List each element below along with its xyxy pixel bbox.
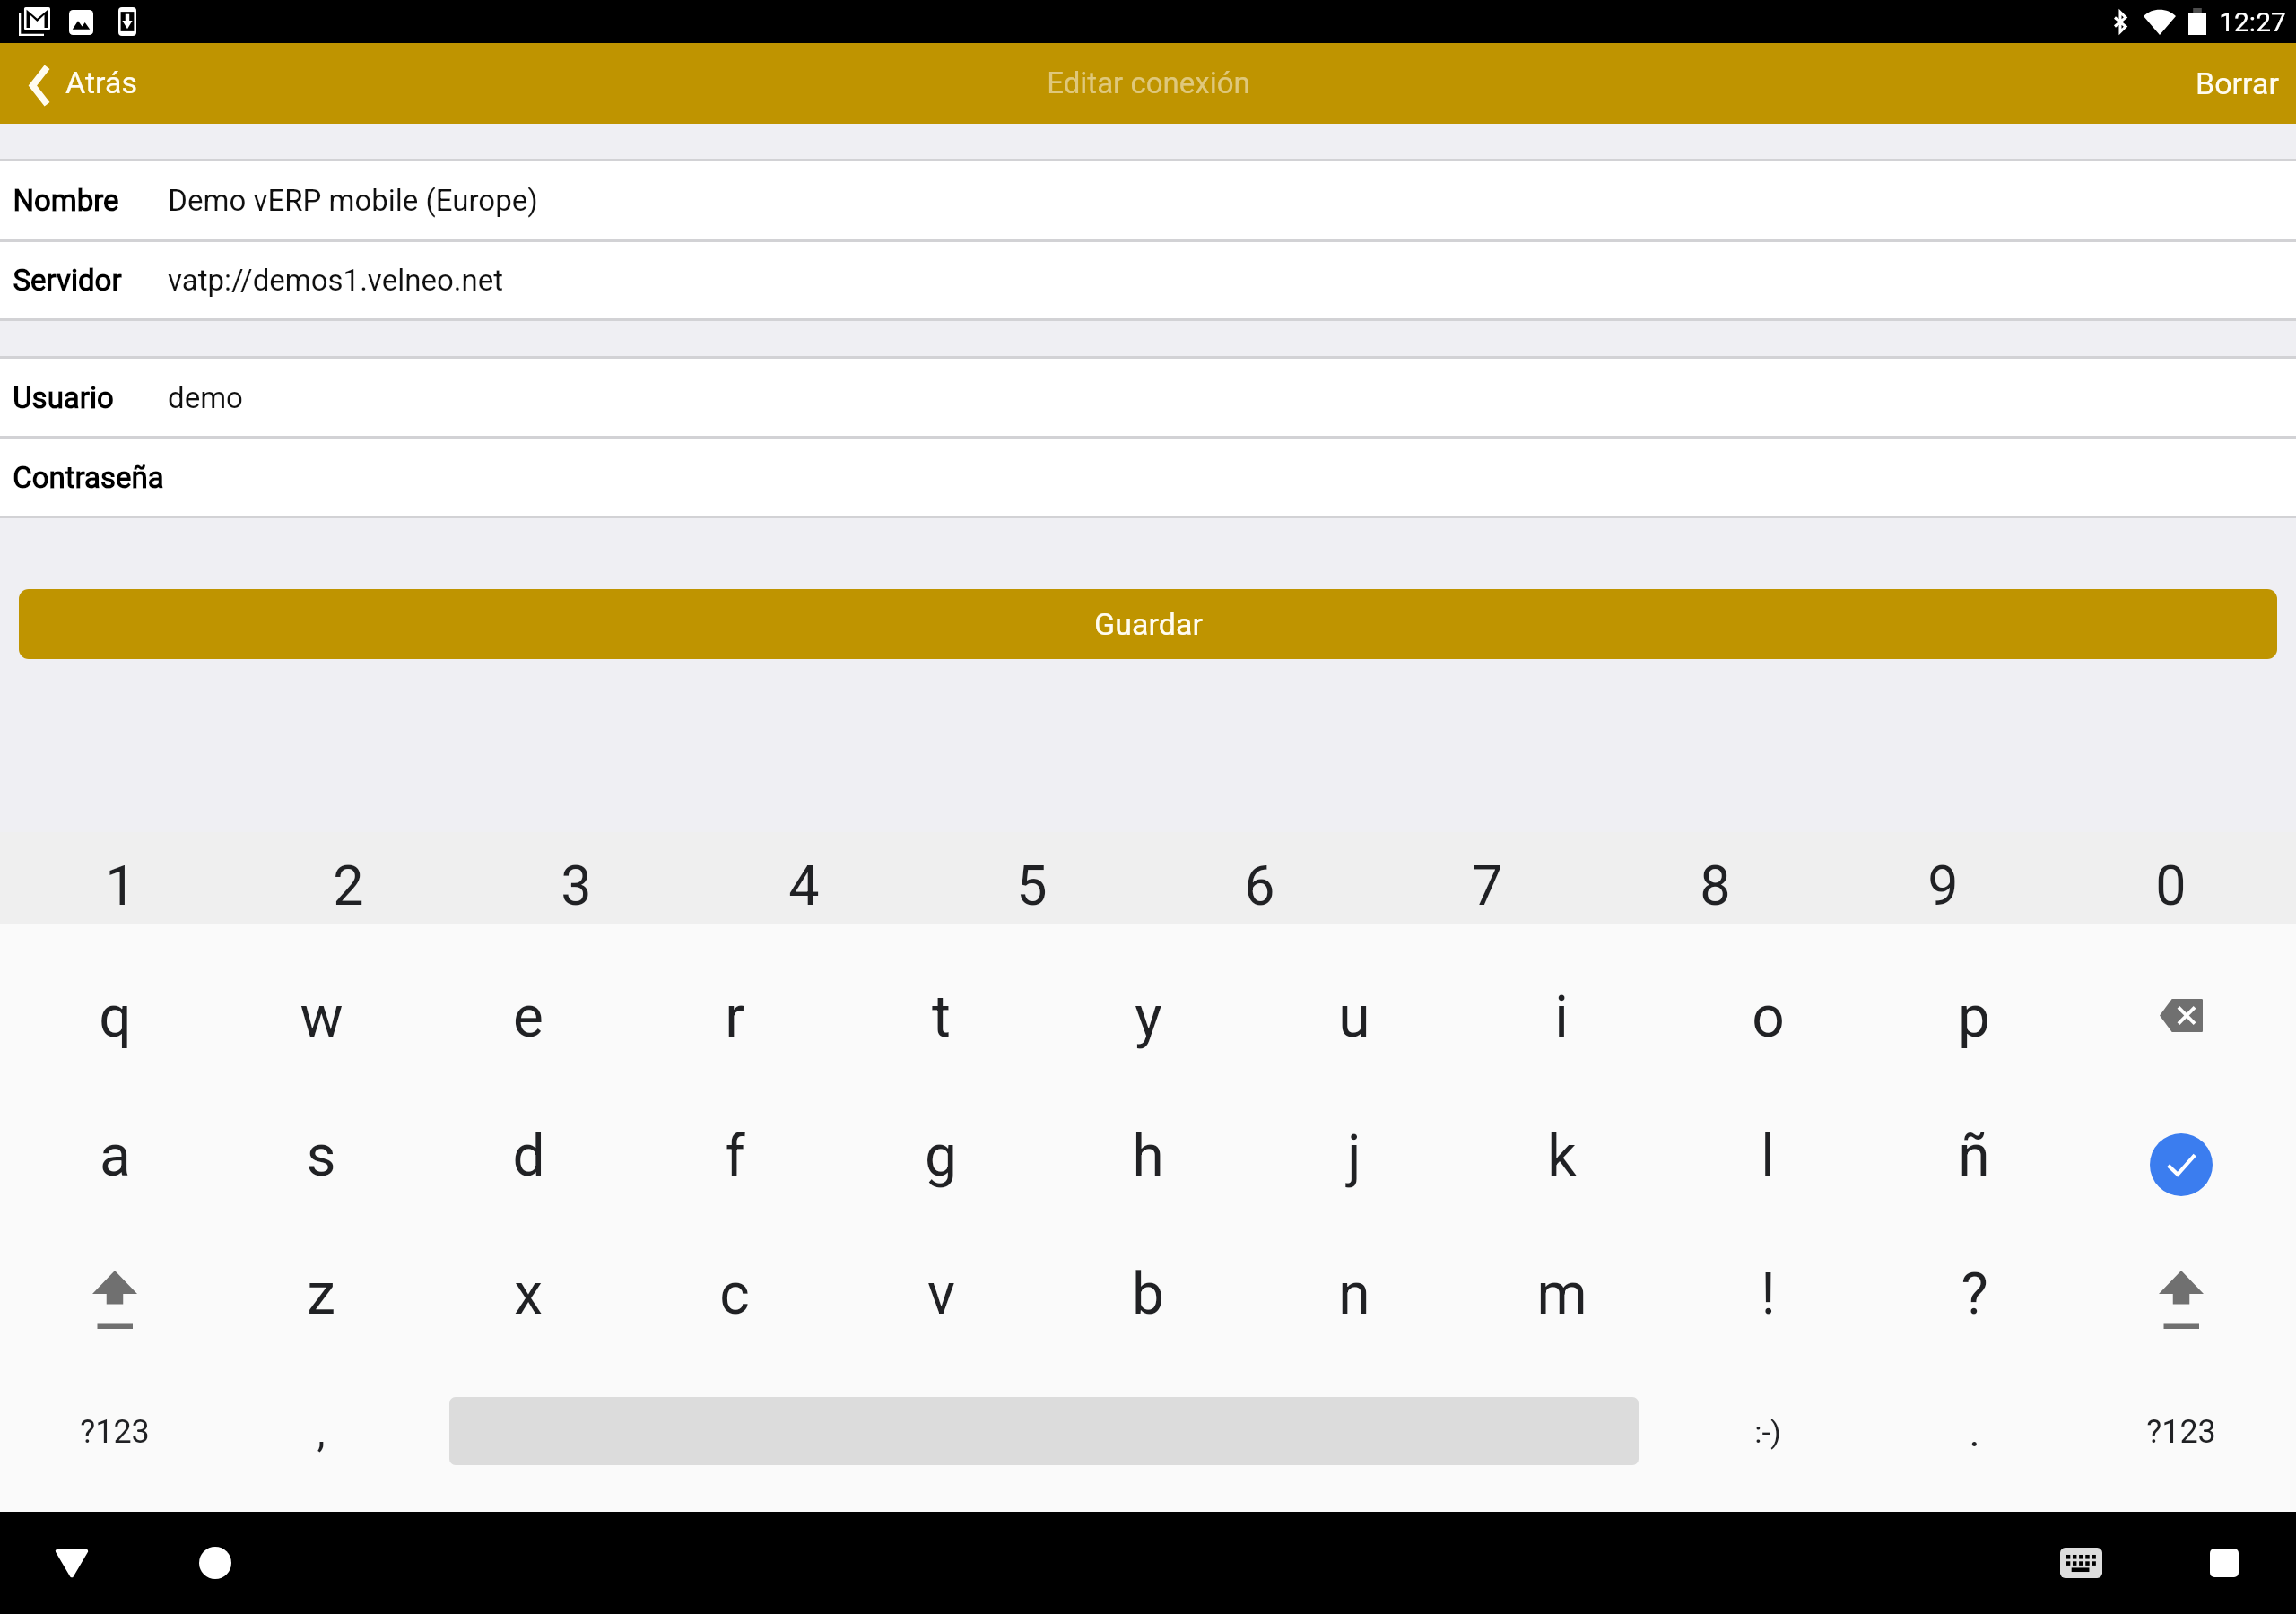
staticText: l (1761, 1123, 1775, 1190)
button[interactable]: h (1045, 1087, 1251, 1225)
staticText: ? (1961, 1261, 1988, 1328)
button[interactable]: t (838, 948, 1044, 1086)
button[interactable]: Shift (12, 1230, 218, 1368)
staticText: 0 (2155, 854, 2187, 917)
staticText: f (725, 1123, 745, 1190)
button[interactable]: 5 (918, 832, 1145, 924)
staticText: 2 (333, 854, 364, 917)
staticText: a (100, 1123, 131, 1190)
button[interactable]: l (1665, 1087, 1871, 1225)
staticText: o (1752, 984, 1785, 1051)
button[interactable]: f (631, 1087, 838, 1225)
button[interactable]: 3 (462, 832, 690, 924)
staticText: Guardar (1094, 606, 1203, 642)
button[interactable]: ?123 (12, 1363, 218, 1501)
staticText: n (1338, 1261, 1370, 1328)
button[interactable]: 2 (234, 832, 462, 924)
staticText: r (725, 984, 744, 1051)
button[interactable]: :-) (1665, 1363, 1871, 1501)
staticText: 4 (788, 854, 820, 917)
button[interactable]: Contraseña (0, 439, 2296, 516)
staticText: k (1547, 1123, 1577, 1190)
staticText: 1 (105, 854, 136, 917)
button[interactable]: o (1665, 948, 1871, 1086)
staticText: demo (168, 380, 243, 415)
button[interactable]: a (12, 1087, 218, 1225)
staticText: t (932, 984, 951, 1051)
button[interactable]: Back (18, 1512, 126, 1614)
button[interactable]: 0 (2057, 832, 2284, 924)
button[interactable]: . (1871, 1363, 2077, 1501)
button[interactable]: i (1458, 948, 1665, 1086)
staticText: w (300, 984, 344, 1051)
button[interactable]: Servidor (0, 242, 2296, 318)
button[interactable]: Enter (2078, 1096, 2284, 1234)
staticText: , (317, 1408, 326, 1456)
button[interactable]: Atrás (0, 43, 157, 124)
button[interactable]: Nombre (0, 161, 2296, 239)
button[interactable]: Space (449, 1397, 1639, 1465)
staticText: 9 (1927, 854, 1959, 917)
staticText: vatp://demos1.velneo.net (168, 263, 503, 298)
button[interactable]: g (838, 1087, 1044, 1225)
button[interactable]: j (1251, 1087, 1457, 1225)
staticText: Contraseña (13, 460, 164, 495)
button[interactable]: Recents (2170, 1512, 2278, 1614)
button[interactable]: ?123 (2078, 1363, 2284, 1501)
staticText: 5 (1016, 854, 1048, 917)
button[interactable]: s (218, 1087, 424, 1225)
button[interactable]: Usuario (0, 359, 2296, 436)
button[interactable]: Hide keyboard (2027, 1512, 2135, 1614)
button[interactable]: ! (1665, 1225, 1871, 1363)
staticText: Demo vERP mobile (Europe) (168, 183, 538, 218)
staticText: q (99, 984, 132, 1051)
staticText: 3 (561, 854, 592, 917)
button[interactable]: x (425, 1225, 631, 1363)
staticText: . (1969, 1408, 1980, 1456)
button[interactable]: ñ (1871, 1087, 2077, 1225)
staticText: 6 (1244, 854, 1275, 917)
button[interactable]: Borrar (2161, 43, 2296, 124)
button[interactable]: r (631, 948, 838, 1086)
staticText: Atrás (65, 65, 137, 100)
button[interactable]: 8 (1601, 832, 1829, 924)
staticText: :-) (1754, 1414, 1781, 1450)
staticText: 12:27 (2219, 6, 2286, 38)
button[interactable]: 6 (1145, 832, 1373, 924)
button[interactable]: d (425, 1087, 631, 1225)
staticText: ?123 (2146, 1413, 2216, 1451)
staticText: m (1536, 1261, 1587, 1328)
button[interactable]: Home (161, 1512, 269, 1614)
button[interactable]: ? (1871, 1225, 2077, 1363)
button[interactable]: Guardar (19, 589, 2277, 659)
staticText: Usuario (13, 380, 114, 415)
button[interactable]: m (1458, 1225, 1665, 1363)
button[interactable]: z (218, 1225, 424, 1363)
button[interactable]: b (1045, 1225, 1251, 1363)
button[interactable]: u (1251, 948, 1457, 1086)
button[interactable]: c (631, 1225, 838, 1363)
button[interactable]: y (1045, 948, 1251, 1086)
button[interactable]: e (425, 948, 631, 1086)
button[interactable]: 1 (6, 832, 234, 924)
button[interactable]: Backspace (2078, 946, 2284, 1084)
button[interactable]: p (1871, 948, 2077, 1086)
staticText: u (1338, 984, 1370, 1051)
staticText: ?123 (80, 1413, 150, 1451)
staticText: i (1554, 984, 1569, 1051)
staticText: p (1958, 984, 1990, 1051)
staticText: Servidor (13, 263, 122, 298)
staticText: v (927, 1261, 955, 1328)
button[interactable]: Shift (2078, 1230, 2284, 1368)
staticText: e (513, 984, 544, 1051)
button[interactable]: q (12, 948, 218, 1086)
button[interactable]: n (1251, 1225, 1457, 1363)
button[interactable]: w (218, 948, 424, 1086)
button[interactable]: , (218, 1363, 424, 1501)
button[interactable]: k (1458, 1087, 1665, 1225)
staticText: j (1347, 1123, 1361, 1190)
button[interactable]: 4 (690, 832, 918, 924)
button[interactable]: 9 (1829, 832, 2057, 924)
button[interactable]: v (838, 1225, 1044, 1363)
button[interactable]: 7 (1373, 832, 1601, 924)
